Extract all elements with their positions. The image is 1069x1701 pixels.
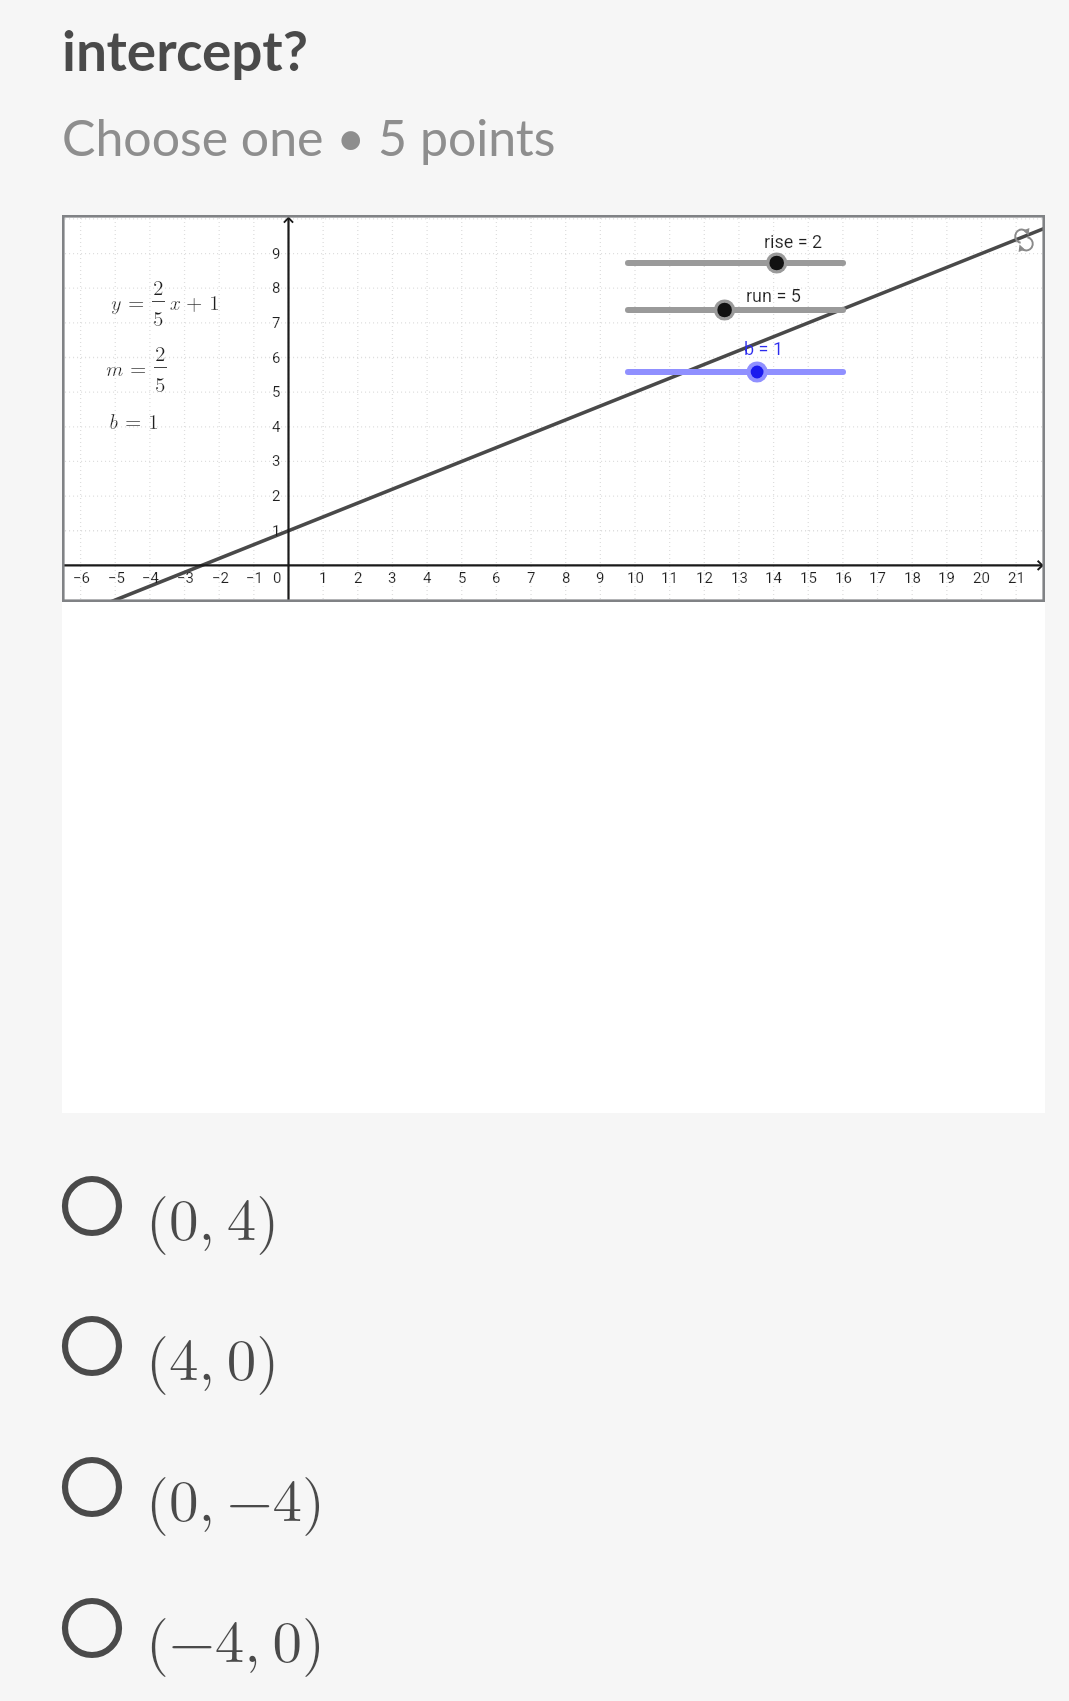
button[interactable]: b = 1 — [614, 350, 857, 394]
staticText: 4 — [423, 569, 432, 587]
staticText: 6 — [492, 569, 501, 587]
staticText: 19 — [938, 569, 955, 587]
staticText: run = 5 — [746, 285, 801, 306]
staticText: 21 — [1008, 569, 1025, 587]
staticText: b — [108, 405, 118, 435]
staticText: 9 — [272, 245, 281, 263]
staticText: −4 — [142, 569, 160, 587]
staticText: 2 — [354, 569, 363, 587]
button[interactable]: (4, 0) — [0, 1276, 1069, 1416]
staticText: = 1 — [118, 405, 159, 435]
staticText: 5 — [272, 383, 281, 401]
staticText: (0, −4) — [146, 1455, 326, 1539]
staticText: −3 — [177, 569, 195, 587]
staticText: 3 — [272, 452, 281, 470]
staticText: 10 — [627, 569, 644, 587]
staticText: 12 — [696, 569, 713, 587]
staticText: −6 — [73, 569, 91, 587]
staticText: 4 — [272, 418, 281, 436]
staticText: 3 — [388, 569, 397, 587]
staticText: 5 — [155, 368, 166, 398]
staticText: 5 — [458, 569, 467, 587]
staticText: 6 — [272, 349, 281, 367]
staticText: (4, 0) — [146, 1314, 280, 1398]
staticText: + 1 — [179, 286, 220, 316]
button[interactable]: (0, 4) — [0, 1136, 1069, 1276]
staticText: 1 — [319, 569, 328, 587]
staticText: 7 — [272, 314, 281, 332]
button[interactable]: (−4, 0) — [0, 1558, 1069, 1698]
staticText: 9 — [596, 569, 605, 587]
staticText: 7 — [527, 569, 536, 587]
staticText: 16 — [835, 569, 852, 587]
button[interactable]: rise = 2 — [614, 241, 857, 285]
staticText: 11 — [661, 569, 678, 587]
staticText: −1 — [246, 569, 264, 587]
staticText: 17 — [869, 569, 886, 587]
button[interactable]: Reset graph — [1004, 220, 1044, 260]
staticText: m — [105, 352, 123, 382]
staticText: = — [123, 352, 154, 382]
staticText: Choose one • 5 points — [62, 107, 556, 167]
staticText: rise = 2 — [764, 231, 823, 252]
staticText: y — [110, 286, 121, 316]
staticText: 14 — [765, 569, 782, 587]
staticText: = — [121, 286, 152, 316]
staticText: 8 — [562, 569, 571, 587]
staticText: 18 — [904, 569, 921, 587]
staticText: 2 — [153, 271, 164, 301]
staticText: 2 — [155, 337, 166, 367]
staticText: −5 — [108, 569, 126, 587]
staticText: 5 — [153, 302, 164, 332]
staticText: 15 — [800, 569, 817, 587]
button[interactable]: (0, −4) — [0, 1417, 1069, 1557]
staticText: b = 1 — [744, 338, 784, 359]
staticText: 20 — [973, 569, 990, 587]
staticText: intercept? — [62, 17, 308, 83]
staticText: x — [165, 286, 179, 316]
staticText: 2 — [272, 487, 281, 505]
button[interactable]: run = 5 — [614, 288, 857, 332]
staticText: 0 — [273, 569, 282, 587]
staticText: 8 — [272, 279, 281, 297]
staticText: (0, 4) — [146, 1174, 280, 1258]
staticText: 13 — [731, 569, 748, 587]
staticText: 1 — [272, 522, 281, 540]
staticText: (−4, 0) — [146, 1596, 326, 1680]
staticText: −2 — [212, 569, 230, 587]
